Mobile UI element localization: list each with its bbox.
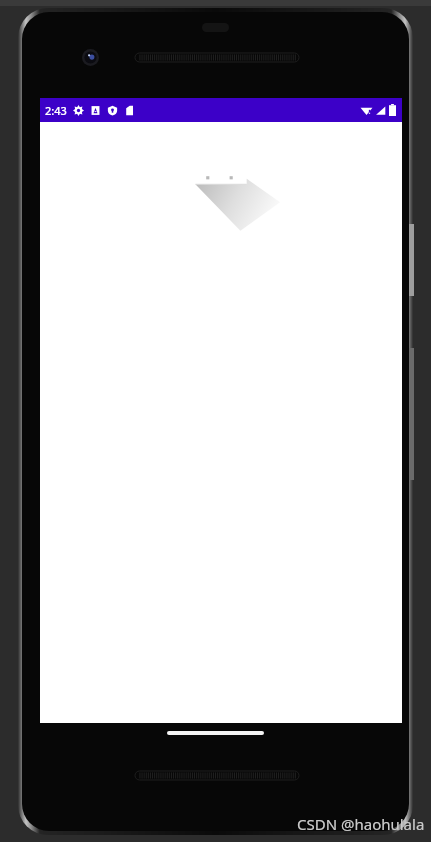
staticText: 2:43 [45,103,67,118]
button[interactable]: Home gesture handle [167,731,264,735]
staticText: CSDN @haohulala [297,814,425,834]
